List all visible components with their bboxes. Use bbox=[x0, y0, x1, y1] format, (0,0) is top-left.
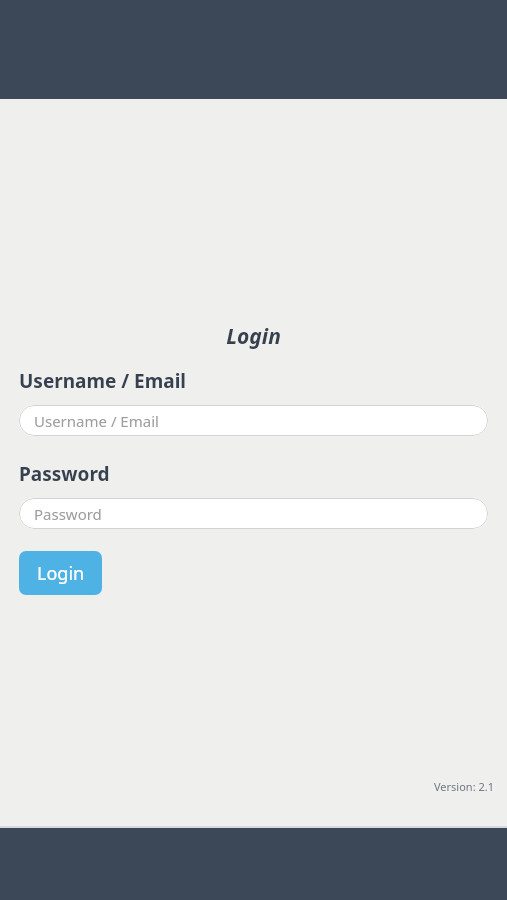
staticText: Password bbox=[34, 504, 102, 524]
staticText: Version: 2.1 bbox=[433, 779, 494, 794]
button[interactable]: Login bbox=[19, 551, 102, 595]
button[interactable]: Username / Email bbox=[19, 405, 488, 436]
button[interactable]: Password bbox=[19, 498, 488, 529]
staticText: Login bbox=[19, 322, 488, 351]
staticText: Password bbox=[19, 461, 110, 487]
staticText: Login bbox=[37, 561, 85, 586]
staticText: Username / Email bbox=[19, 368, 186, 394]
staticText: Username / Email bbox=[34, 411, 159, 431]
